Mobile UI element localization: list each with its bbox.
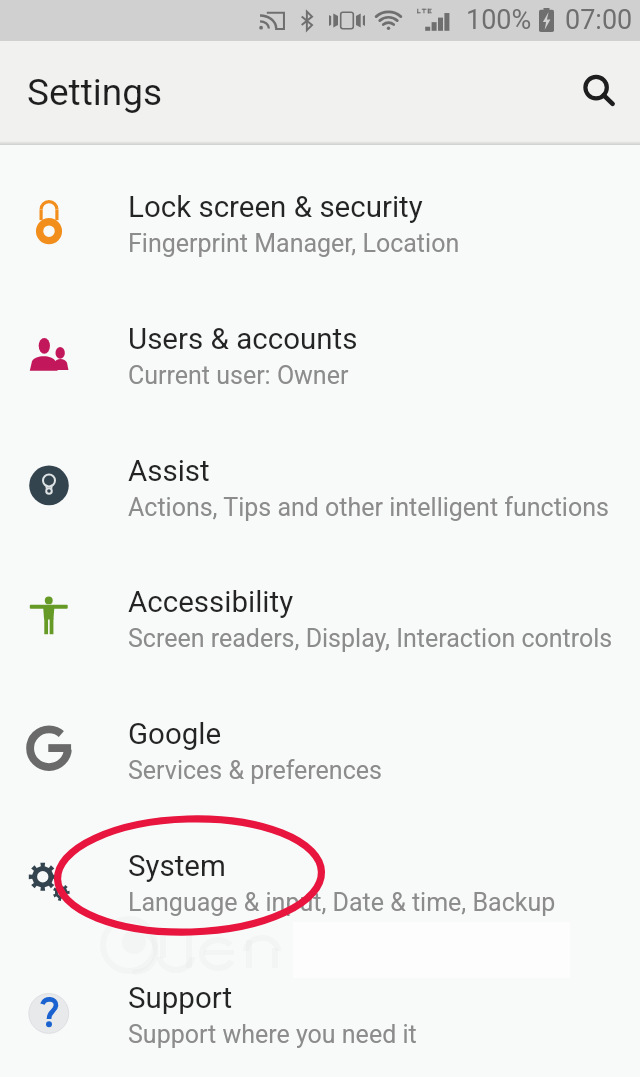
staticText: System — [128, 849, 226, 884]
button[interactable]: Assist — [0, 409, 640, 541]
button[interactable]: Users & accounts — [0, 277, 640, 409]
staticText: Settings — [27, 71, 163, 114]
button[interactable]: Lock screen & security — [0, 145, 640, 277]
staticText: Assist — [128, 454, 210, 489]
button[interactable]: Search — [574, 66, 624, 116]
staticText: Language & input, Date & time, Backup — [128, 888, 556, 917]
staticText: Fingerprint Manager, Location — [128, 229, 460, 258]
staticText: 100% — [466, 4, 532, 36]
button[interactable]: Accessibility — [0, 540, 640, 672]
staticText: Google — [128, 717, 222, 752]
staticText: Support where you need it — [128, 1020, 417, 1049]
button[interactable]: Support — [0, 936, 640, 1068]
staticText: Current user: Owner — [128, 361, 349, 390]
button[interactable]: Google — [0, 672, 640, 804]
staticText: Users & accounts — [128, 322, 358, 357]
staticText: 07:00 — [565, 4, 633, 36]
staticText: Services & preferences — [128, 756, 382, 785]
button[interactable]: System — [0, 804, 640, 936]
staticText: Support — [128, 981, 233, 1016]
staticText: Accessibility — [128, 585, 294, 620]
staticText: Screen readers, Display, Interaction con… — [128, 624, 613, 653]
staticText: Lock screen & security — [128, 190, 423, 225]
staticText: Actions, Tips and other intelligent func… — [128, 493, 609, 522]
